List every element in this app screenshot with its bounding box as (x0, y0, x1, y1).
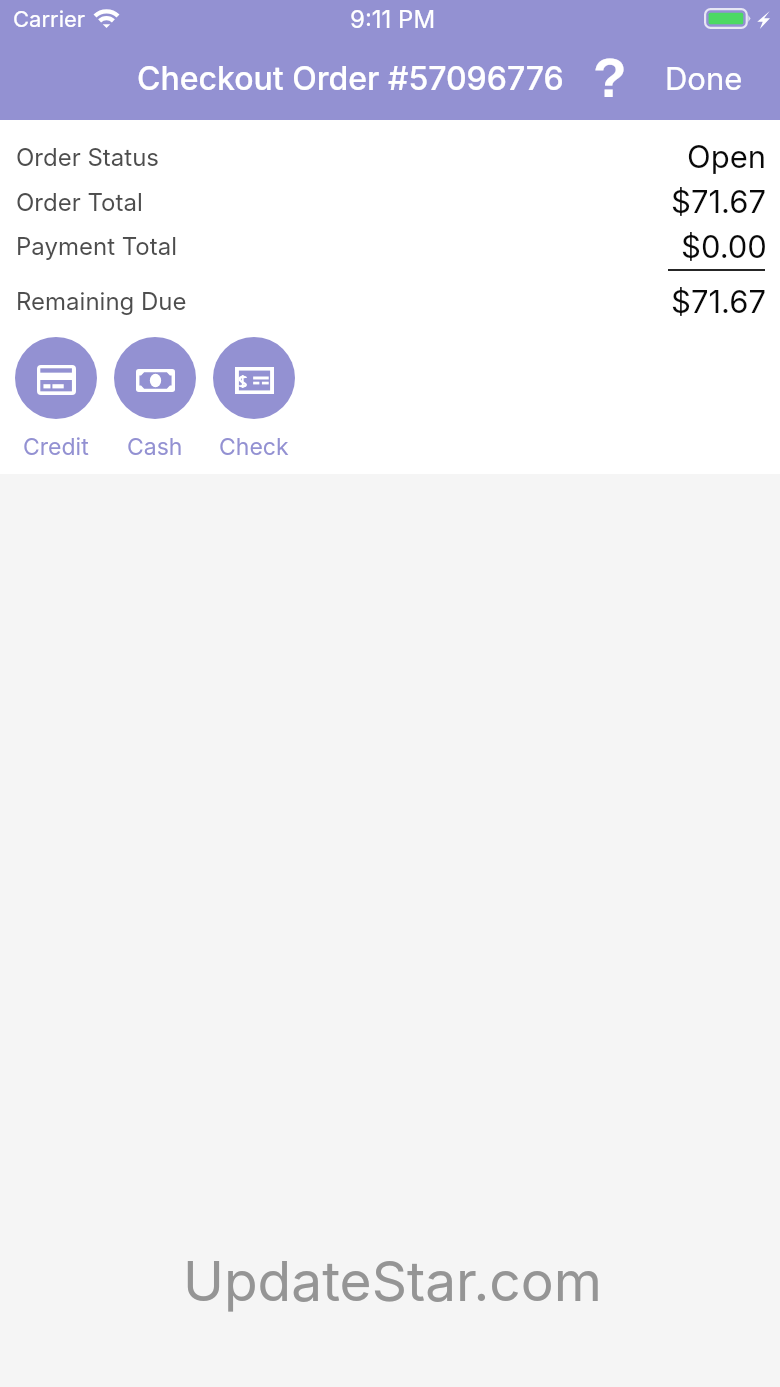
staticText: Check (219, 433, 289, 461)
staticText: Carrier (13, 6, 86, 33)
staticText: $71.67 (671, 183, 766, 221)
staticText: Open (687, 138, 767, 176)
staticText: UpdateStar.com (183, 1248, 602, 1315)
staticText: Credit (23, 433, 89, 461)
staticText: Cash (127, 433, 183, 461)
staticText: ? (593, 47, 627, 108)
button[interactable]: Credit (15, 337, 97, 457)
staticText: $71.67 (671, 283, 766, 321)
button[interactable]: Done (653, 51, 755, 107)
button[interactable] (0, 132, 780, 177)
button[interactable]: Cash (114, 337, 196, 457)
staticText: Payment Total (16, 232, 178, 261)
staticText: $0.00 (681, 228, 767, 266)
staticText: Remaining Due (16, 287, 187, 316)
button[interactable]: Check (213, 337, 295, 457)
button[interactable]: Help (582, 46, 638, 108)
staticText: Done (665, 60, 743, 98)
button[interactable] (0, 177, 780, 222)
staticText: Order Status (16, 143, 160, 172)
staticText: 9:11 PM (350, 5, 436, 34)
staticText: Checkout Order #57096776 (137, 59, 564, 98)
staticText: Order Total (16, 188, 143, 217)
button[interactable] (0, 222, 780, 270)
button[interactable] (0, 276, 780, 324)
